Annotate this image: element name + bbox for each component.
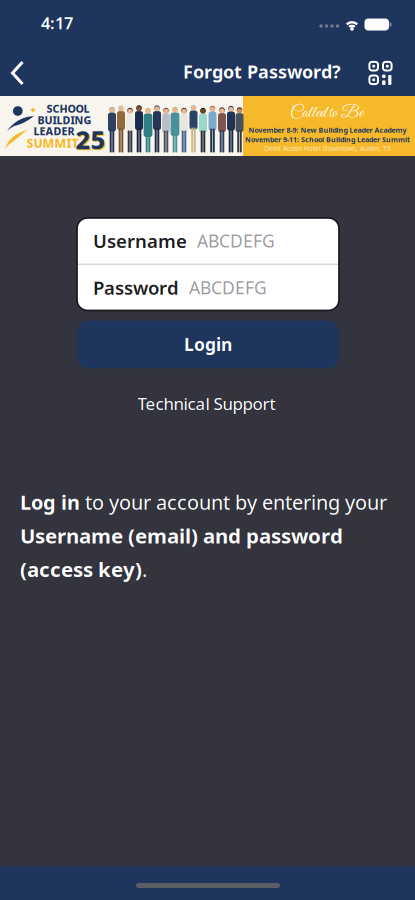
staticText: Username: [93, 228, 187, 253]
button[interactable]: Technical Support: [137, 392, 275, 415]
button[interactable]: [3, 56, 33, 90]
staticText: Login: [184, 332, 232, 356]
button[interactable]: [368, 61, 392, 85]
staticText: BUILDING: [37, 113, 91, 127]
staticText: Password: [93, 275, 179, 300]
staticText: (access key).: [20, 555, 147, 583]
staticText: ABCDEFG: [189, 276, 267, 299]
staticText: Omni Austin Hotel Downtown, Austin, TX: [264, 144, 391, 153]
button[interactable]: Login: [77, 321, 338, 368]
button[interactable]: Forgot Password?: [183, 59, 341, 84]
staticText: SUMMIT: [26, 135, 78, 151]
button[interactable]: Username: [77, 218, 339, 264]
staticText: November 8-9: New Building Leader Academ…: [248, 125, 406, 135]
staticText: Log in to your account by entering your: [20, 489, 387, 515]
staticText: ABCDEFG: [197, 229, 275, 253]
staticText: LEADER: [33, 124, 74, 138]
staticText: SCHOOL: [46, 101, 89, 116]
staticText: 25: [75, 122, 105, 157]
button[interactable]: Password: [77, 265, 339, 310]
staticText: November 9-11: School Building Leader Su…: [245, 135, 410, 144]
button[interactable]: SCHOOL: [0, 96, 415, 156]
staticText: 25: [77, 123, 107, 158]
staticText: 4:17: [41, 12, 73, 34]
staticText: Called to Be: [290, 103, 363, 123]
staticText: Technical Support: [137, 392, 275, 415]
staticText: Forgot Password?: [183, 59, 341, 84]
staticText: Username (email) and password: [20, 522, 343, 549]
